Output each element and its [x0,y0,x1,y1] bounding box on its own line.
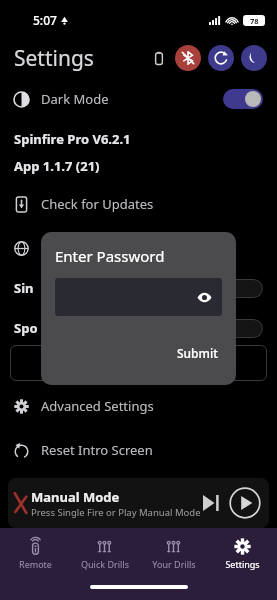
button[interactable]: Reset Intro Screen [14,437,277,463]
button[interactable]: Next [203,495,219,511]
button[interactable]: Bluetooth off [175,45,201,71]
button[interactable]: Dark Mode [14,82,263,116]
button[interactable]: Refresh [208,45,234,71]
button[interactable]: Theme [241,45,267,71]
staticText: Spinfire Pro V6.2.1 [14,130,131,148]
other: Show password [197,290,212,305]
button[interactable]: Play [229,487,261,519]
staticText: Dark Mode [41,90,109,108]
staticText: Manual Mode [31,488,120,506]
staticText: Reset Intro Screen [41,441,153,459]
staticText: Settings [225,558,260,570]
staticText: Your Drills [152,558,196,570]
staticText: Settings [14,44,94,73]
staticText: Enter Password [55,246,165,266]
staticText: Sin [14,279,34,297]
staticText: Advanced Settings [41,397,154,415]
staticText: Press Single Fire or Play Manual Mode [31,506,201,519]
button[interactable]: Settings [208,528,277,580]
staticText: Quick Drills [81,558,129,570]
button[interactable]: Manual Mode [8,478,269,528]
staticText: Check for Updates [41,195,154,213]
button[interactable]: Submit [173,341,222,365]
button[interactable]: Spo [14,317,263,339]
staticText: Submit [177,345,218,361]
button[interactable]: Check for Updates [14,191,277,217]
button[interactable] [14,235,277,261]
button[interactable]: Advanced Settings [14,393,277,419]
staticText: 78 [250,16,259,26]
button[interactable]: Show password [55,278,222,316]
button[interactable]: Quick Drills [70,528,139,580]
staticText: App 1.1.7 (21) [14,157,100,175]
staticText: 5:07 [33,12,57,28]
button[interactable]: Remote [0,528,70,580]
button[interactable]: Your Drills [139,528,208,580]
button[interactable]: Battery [152,51,166,65]
staticText: Spo [14,319,38,337]
button[interactable]: Sin [14,277,263,299]
staticText: Remote [19,558,52,570]
